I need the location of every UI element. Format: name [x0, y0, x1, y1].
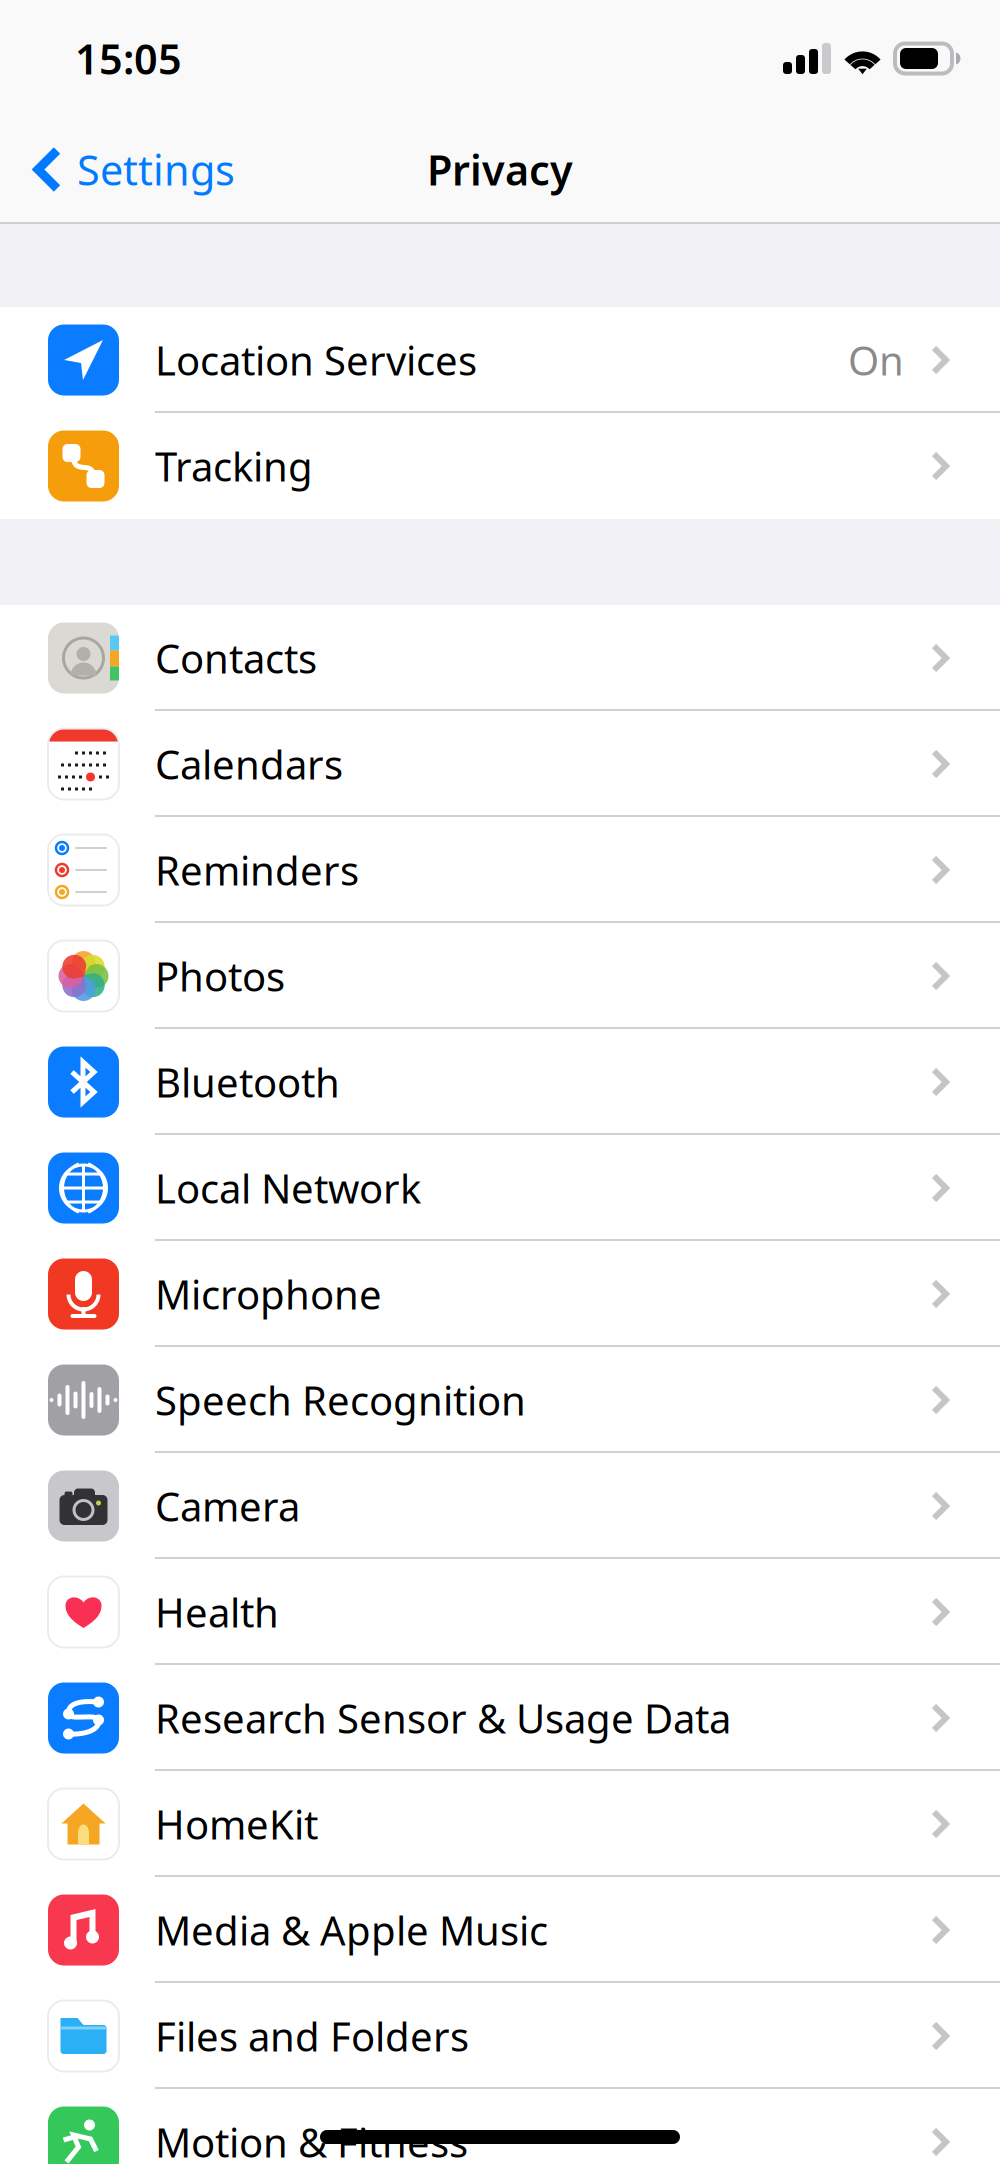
staticText: On	[848, 333, 904, 386]
button[interactable]: Research Sensor & Usage Data	[0, 1665, 1000, 1771]
staticText: Health	[155, 1585, 279, 1638]
staticText: Motion & Fitness	[155, 2115, 468, 2164]
button[interactable]: Local Network	[0, 1135, 1000, 1241]
staticText: Bluetooth	[155, 1055, 340, 1108]
staticText: Tracking	[155, 439, 313, 492]
button[interactable]: Camera	[0, 1453, 1000, 1559]
staticText: Reminders	[155, 843, 359, 896]
staticText: HomeKit	[155, 1797, 318, 1850]
staticText: Settings	[77, 142, 235, 197]
button[interactable]: HomeKit	[0, 1771, 1000, 1877]
staticText: Speech Recognition	[155, 1373, 526, 1426]
staticText: Microphone	[155, 1267, 382, 1320]
button[interactable]: Reminders	[0, 817, 1000, 923]
staticText: Research Sensor & Usage Data	[155, 1691, 731, 1744]
staticText: Camera	[155, 1479, 300, 1532]
button[interactable]: Files and Folders	[0, 1983, 1000, 2089]
button[interactable]: Motion & Fitness	[0, 2089, 1000, 2164]
button[interactable]: Health	[0, 1559, 1000, 1665]
button[interactable]: Calendars	[0, 711, 1000, 817]
button[interactable]: Microphone	[0, 1241, 1000, 1347]
button[interactable]: Contacts	[0, 605, 1000, 711]
button[interactable]: Tracking	[0, 413, 1000, 519]
button[interactable]: Speech Recognition	[0, 1347, 1000, 1453]
staticText: Contacts	[155, 631, 317, 684]
staticText: Media & Apple Music	[155, 1903, 548, 1956]
button[interactable]: Location Services	[0, 307, 1000, 413]
button[interactable]: Bluetooth	[0, 1029, 1000, 1135]
button[interactable]: Settings	[0, 119, 253, 219]
button[interactable]: Photos	[0, 923, 1000, 1029]
staticText: Location Services	[155, 333, 477, 386]
staticText: Calendars	[155, 737, 343, 790]
staticText: Privacy	[427, 142, 573, 197]
staticText: 15:05	[75, 31, 182, 86]
staticText: Local Network	[155, 1161, 421, 1214]
staticText: Files and Folders	[155, 2009, 469, 2062]
button[interactable]: Media & Apple Music	[0, 1877, 1000, 1983]
staticText: Photos	[155, 949, 285, 1002]
